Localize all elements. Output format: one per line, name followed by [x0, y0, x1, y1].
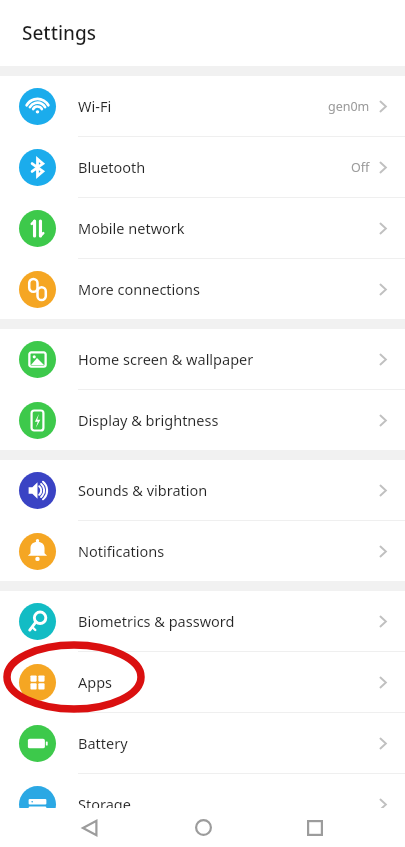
button[interactable]: Storage — [0, 774, 405, 834]
staticText: gen0m — [328, 98, 370, 115]
button[interactable]: Home — [180, 808, 226, 847]
staticText: Storage — [78, 794, 131, 814]
staticText: Biometrics & password — [78, 611, 235, 631]
button[interactable]: Battery — [0, 713, 405, 773]
staticText: Wi-Fi — [78, 96, 112, 116]
staticText: Mobile network — [78, 218, 185, 238]
button[interactable]: Home screen & wallpaper — [0, 329, 405, 389]
button[interactable]: Recent apps — [292, 808, 338, 847]
staticText: Settings — [22, 20, 96, 46]
staticText: More connections — [78, 279, 201, 299]
button[interactable]: Bluetooth — [0, 137, 405, 197]
staticText: Off — [351, 159, 370, 176]
staticText: Display & brightness — [78, 410, 219, 430]
button[interactable]: Notifications — [0, 521, 405, 581]
staticText: Notifications — [78, 541, 165, 561]
staticText: Apps — [78, 672, 113, 692]
button[interactable]: Sounds & vibration — [0, 460, 405, 520]
button[interactable]: Display & brightness — [0, 390, 405, 450]
staticText: Home screen & wallpaper — [78, 349, 254, 369]
staticText: Battery — [78, 733, 128, 753]
staticText: Sounds & vibration — [78, 480, 208, 500]
staticText: Bluetooth — [78, 157, 146, 177]
button[interactable]: Wi-Fi — [0, 76, 405, 136]
button[interactable]: More connections — [0, 259, 405, 319]
button[interactable]: Apps — [0, 652, 405, 712]
button[interactable]: Mobile network — [0, 198, 405, 258]
button[interactable]: Back — [67, 808, 113, 847]
button[interactable]: Biometrics & password — [0, 591, 405, 651]
